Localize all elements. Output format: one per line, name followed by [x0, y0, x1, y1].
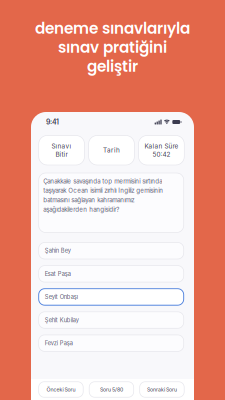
button[interactable]: Tarih — [89, 135, 134, 165]
button[interactable]: Önceki Soru — [39, 382, 83, 397]
staticText: Sınavı — [52, 142, 72, 150]
button[interactable]: Şehit Kubilay — [39, 312, 184, 328]
button[interactable]: Şahin Bey — [39, 242, 184, 259]
staticText: Şehit Kubilay — [45, 317, 79, 323]
staticText: geliştir — [87, 56, 138, 77]
staticText: Sonraki Soru — [147, 386, 177, 393]
staticText: Çanakkale savaşında top mermisini sırtın… — [43, 177, 163, 213]
staticText: 50:42 — [152, 150, 170, 158]
button[interactable]: Soru 5/80 — [89, 382, 134, 397]
button[interactable]: Esat Paşa — [39, 266, 184, 282]
staticText: Soru 5/80 — [100, 386, 123, 393]
staticText: Bitir — [56, 150, 68, 158]
staticText: Önceki Soru — [46, 386, 75, 393]
staticText: Fevzi Paşa — [45, 340, 73, 347]
staticText: Esat Paşa — [45, 270, 71, 277]
staticText: 9:41 — [46, 118, 59, 126]
staticText: sınav pratiğini — [58, 37, 167, 58]
button[interactable]: Seyit Onbaşı — [39, 289, 184, 305]
button[interactable]: Sonraki Soru — [140, 382, 184, 397]
staticText: Kalan Süre — [144, 142, 178, 150]
staticText: Şahin Bey — [45, 247, 71, 254]
staticText: deneme sınavlarıyla — [35, 18, 190, 39]
button[interactable]: Fevzi Paşa — [39, 335, 184, 351]
staticText: Seyit Onbaşı — [45, 293, 78, 300]
button[interactable]: Kalan Süre — [138, 135, 184, 165]
button[interactable]: Sınavı — [39, 135, 84, 165]
staticText: Tarih — [103, 146, 120, 154]
